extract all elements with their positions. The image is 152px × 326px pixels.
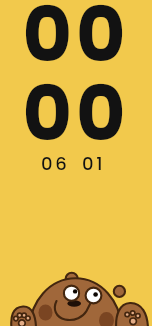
staticText: 00 xyxy=(22,0,130,87)
staticText: 00 xyxy=(22,60,130,166)
staticText: 06 xyxy=(41,151,70,176)
staticText: 01 xyxy=(82,151,106,176)
